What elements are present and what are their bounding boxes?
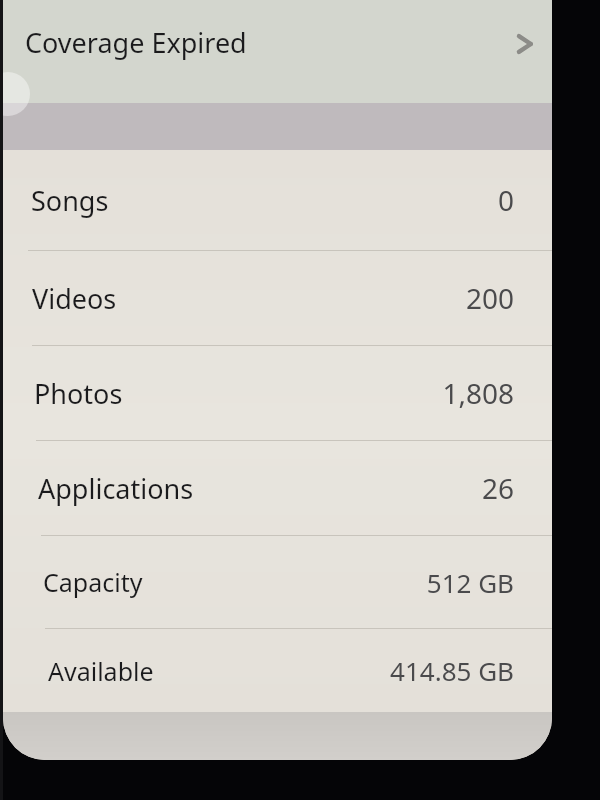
staticText: 512 GB [426,565,514,600]
staticText: 200 [465,279,514,317]
button[interactable]: Available [3,629,552,712]
other: Coverage Expired details [515,33,537,55]
button[interactable]: Photos [3,346,552,440]
button[interactable]: Capacity [3,536,552,628]
staticText: Songs [31,182,109,219]
staticText: Applications [38,470,194,507]
staticText: Capacity [43,565,143,599]
button[interactable]: Applications [3,441,552,535]
staticText: Coverage Expired [25,24,247,61]
button[interactable]: Coverage Expired [3,0,552,103]
staticText: Videos [32,280,117,317]
button[interactable]: Videos [3,251,552,345]
staticText: 0 [497,181,514,219]
staticText: 26 [481,469,514,507]
staticText: Available [48,654,154,688]
button[interactable]: Songs [3,150,552,250]
staticText: 1,808 [442,374,514,412]
staticText: 414.85 GB [390,653,514,688]
staticText: Photos [34,375,123,412]
